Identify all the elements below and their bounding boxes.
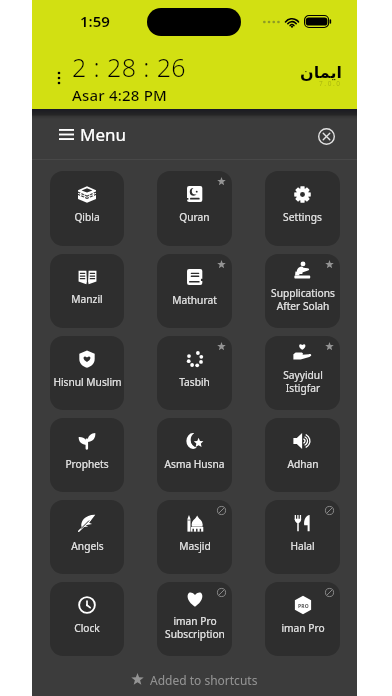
button[interactable]: Angels [50,500,124,574]
staticText: iman Pro Subscription [165,614,225,641]
button[interactable]: iman Pro Subscription [157,582,232,656]
staticText: Added to shortcuts [150,672,258,688]
staticText: Quran [179,210,210,224]
staticText: Masjid [179,539,211,553]
button[interactable]: Settings [265,171,340,246]
staticText: Sayyidul Istigfar [283,368,323,395]
staticText: Manzil [71,292,103,306]
staticText: 7.0.0 [319,79,342,88]
button[interactable]: Sayyidul Istigfar [265,336,340,410]
staticText: iman Pro [281,621,325,635]
staticText: ايمان [300,63,342,82]
button[interactable]: Hisnul Muslim [50,336,124,410]
button[interactable]: Added to shortcuts [32,663,357,696]
button[interactable]: Asma Husna [157,418,232,492]
button[interactable]: PRO [265,582,340,656]
button[interactable]: Supplications After Solah [265,254,340,328]
staticText: Mathurat [172,293,217,307]
button[interactable]: Quran [157,171,232,246]
button[interactable]: Mathurat [157,254,232,328]
staticText: Menu [80,123,127,146]
staticText: Asar 4:28 PM [72,85,167,105]
button[interactable]: Manzil [50,254,124,328]
staticText: Halal [290,539,315,553]
staticText: Clock [74,621,100,635]
button[interactable]: Tasbih [157,336,232,410]
staticText: Supplications After Solah [271,286,335,313]
staticText: Asma Husna [164,457,225,471]
staticText: PRO [298,603,309,610]
button[interactable]: Menu [59,123,127,146]
staticText: 2 : 28 : 26 [72,50,186,84]
staticText: Adhan [287,457,319,471]
button[interactable]: Adhan [265,418,340,492]
staticText: Hisnul Muslim [53,375,122,389]
button[interactable]: Close [312,122,340,150]
button[interactable]: Masjid [157,500,232,574]
staticText: Settings [283,210,322,224]
staticText: Tasbih [179,375,210,389]
staticText: Prophets [65,457,109,471]
staticText: 1:59 [80,11,110,31]
staticText: Angels [71,539,104,553]
button[interactable]: Halal [265,500,340,574]
button[interactable]: More options [51,64,67,92]
button[interactable]: Clock [50,582,124,656]
staticText: Qibla [74,210,100,224]
button[interactable]: Qibla [50,171,124,246]
button[interactable]: Prophets [50,418,124,492]
